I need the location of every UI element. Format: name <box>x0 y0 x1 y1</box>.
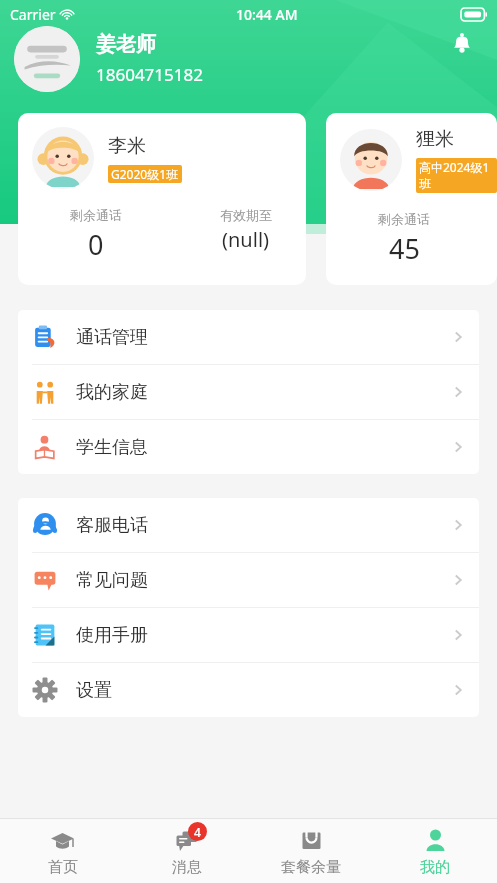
staticText: 常见问题 <box>76 569 148 592</box>
button[interactable]: 我的 <box>373 819 497 883</box>
staticText: 狸米 <box>416 127 454 151</box>
staticText: 45 <box>389 230 420 267</box>
button[interactable]: 使用手册 <box>18 608 479 662</box>
staticText: 剩余通话 <box>70 207 122 223</box>
staticText: 我的家庭 <box>76 381 148 404</box>
staticText: 姜老师 <box>96 32 156 57</box>
staticText: 高中2024级1班 <box>419 159 494 192</box>
staticText: 学生信息 <box>76 436 148 459</box>
staticText: 有效期至 <box>220 207 272 223</box>
staticText: 套餐余量 <box>281 858 341 877</box>
button[interactable]: 狸米 <box>326 113 497 285</box>
button[interactable]: 首页 <box>0 819 125 883</box>
button[interactable]: Notifications <box>445 26 479 60</box>
button[interactable]: 套餐余量 <box>249 819 373 883</box>
staticText: 通话管理 <box>76 326 148 349</box>
staticText: Carrier <box>10 5 56 24</box>
button[interactable]: 我的家庭 <box>18 365 479 419</box>
button[interactable]: 李米 <box>18 113 306 285</box>
staticText: 设置 <box>76 679 112 702</box>
staticText: 4 <box>194 824 201 840</box>
staticText: 李米 <box>108 134 146 158</box>
staticText: 消息 <box>172 858 202 877</box>
staticText: 10:44 AM <box>236 5 298 24</box>
staticText: 使用手册 <box>76 624 148 647</box>
button[interactable]: 常见问题 <box>18 553 479 607</box>
staticText: G2020级1班 <box>111 166 179 182</box>
button[interactable]: 设置 <box>18 663 479 717</box>
button[interactable] <box>14 26 80 92</box>
button[interactable]: 学生信息 <box>18 420 479 474</box>
staticText: 0 <box>88 226 104 263</box>
staticText: 首页 <box>48 858 78 877</box>
staticText: 我的 <box>420 858 450 877</box>
button[interactable]: 4 <box>125 819 249 883</box>
button[interactable]: 通话管理 <box>18 310 479 364</box>
staticText: 客服电话 <box>76 514 148 537</box>
staticText: 18604715182 <box>96 63 203 86</box>
staticText: 剩余通话 <box>378 211 430 227</box>
staticText: (null) <box>222 226 270 253</box>
button[interactable]: 客服电话 <box>18 498 479 552</box>
